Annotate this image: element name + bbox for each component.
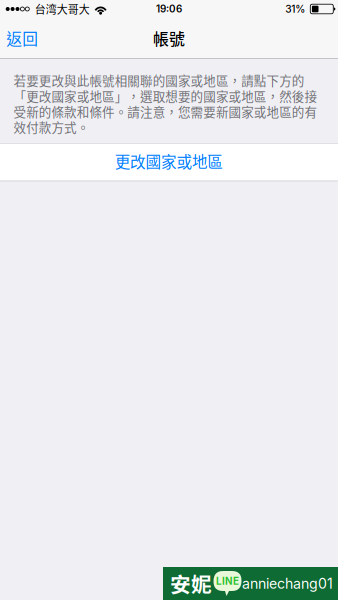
staticText: LINE: [216, 575, 239, 587]
staticText: 效付款方式。: [13, 118, 90, 136]
button[interactable]: 更改國家或地區: [0, 144, 338, 181]
staticText: 安妮: [170, 568, 212, 598]
staticText: 更改國家或地區: [115, 150, 223, 172]
staticText: 31%: [285, 3, 305, 15]
staticText: 帳號: [153, 26, 185, 49]
button[interactable]: 返回: [0, 15, 50, 61]
staticText: 若要更改與此帳號相關聯的國家或地區，請點下方的: [13, 71, 305, 89]
staticText: 台湾大哥大: [35, 1, 90, 17]
staticText: 19:06: [156, 3, 182, 15]
staticText: 返回: [6, 27, 38, 49]
staticText: 「更改國家或地區」，選取想要的國家或地區，然後接: [13, 87, 317, 105]
staticText: 受新的條款和條件。請注意，您需要新國家或地區的有: [13, 102, 317, 120]
staticText: anniechang01: [242, 575, 333, 592]
